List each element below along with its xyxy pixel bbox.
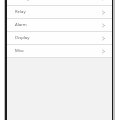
button[interactable]: Display (6, 32, 112, 44)
staticText: Battery (15, 0, 30, 1)
button[interactable]: Battery (6, 0, 112, 5)
button[interactable]: Alarm (6, 19, 112, 31)
button[interactable]: Relay (6, 6, 112, 18)
staticText: Display (15, 35, 30, 41)
button[interactable]: Misc (6, 45, 112, 57)
staticText: Alarm (15, 22, 27, 28)
staticText: Relay (15, 9, 26, 15)
staticText: Misc (15, 48, 24, 54)
